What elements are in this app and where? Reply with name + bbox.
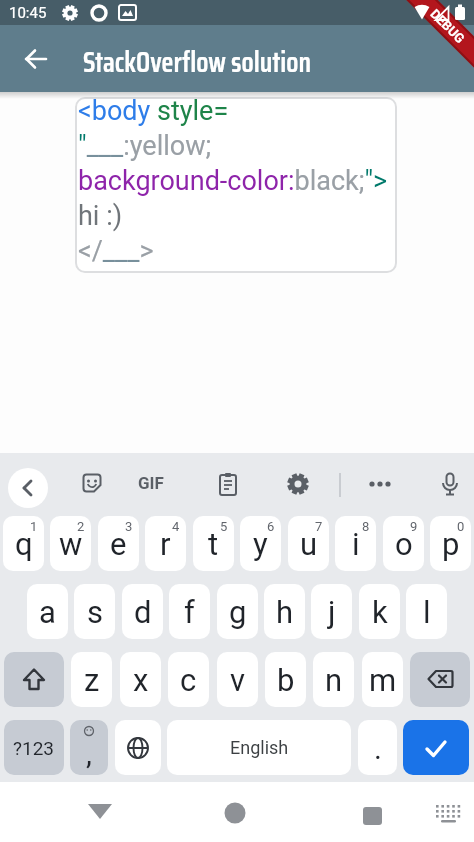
button[interactable] [81, 472, 105, 496]
button[interactable] [363, 807, 383, 827]
staticText: 8 [362, 519, 370, 534]
staticText: 5 [220, 519, 228, 534]
staticText: . [374, 731, 382, 766]
staticText: z [84, 662, 100, 698]
staticText: c [180, 662, 197, 698]
button[interactable]: k [359, 584, 400, 639]
staticText: 6 [267, 519, 275, 534]
button[interactable]: d [122, 584, 163, 639]
button[interactable]: r [145, 516, 186, 571]
button[interactable] [438, 472, 462, 496]
staticText: <body style= "___:yellow; background-col… [78, 95, 388, 266]
button[interactable] [286, 472, 310, 496]
staticText: m [369, 662, 397, 698]
staticText: l [423, 594, 431, 630]
staticText: f [184, 594, 195, 630]
button[interactable]: English [167, 720, 351, 775]
button[interactable]: z [71, 652, 112, 707]
staticText: s [87, 594, 103, 630]
button[interactable] [368, 472, 392, 496]
button[interactable]: t [193, 516, 234, 571]
button[interactable]: a [27, 584, 68, 639]
button[interactable]: c [168, 652, 209, 707]
button[interactable] [12, 35, 60, 83]
button[interactable]: i [335, 516, 376, 571]
button[interactable]: e [98, 516, 139, 571]
staticText: d [134, 594, 152, 630]
staticText: q [15, 526, 33, 562]
staticText: y [253, 526, 268, 562]
staticText: e [110, 526, 127, 562]
staticText: 9 [410, 519, 418, 534]
staticText: i [352, 526, 360, 562]
button[interactable] [224, 802, 246, 824]
button[interactable] [410, 652, 470, 707]
staticText: p [442, 526, 460, 562]
staticText: w [59, 526, 83, 562]
staticText: g [229, 594, 247, 630]
staticText: k [372, 594, 388, 630]
staticText: r [160, 526, 171, 562]
staticText: ?123 [13, 737, 55, 759]
button[interactable]: ?123 [4, 720, 64, 775]
staticText: GIF [138, 473, 164, 493]
staticText: 2 [77, 519, 85, 534]
staticText: 7 [315, 519, 323, 534]
button[interactable] [86, 800, 114, 828]
button[interactable]: w [50, 516, 91, 571]
staticText: StackOverflow solution [83, 40, 312, 84]
button[interactable] [8, 468, 48, 508]
button[interactable]: h [264, 584, 305, 639]
button[interactable] [216, 472, 240, 496]
button[interactable]: p [430, 516, 471, 571]
button[interactable] [115, 720, 161, 775]
staticText: j [328, 594, 336, 630]
staticText: 10:45 [9, 4, 47, 22]
button[interactable]: j [311, 584, 352, 639]
button[interactable]: x [120, 652, 161, 707]
staticText: English [230, 737, 289, 758]
button[interactable]: q [3, 516, 44, 571]
staticText: 0 [457, 519, 465, 534]
button[interactable]: g [217, 584, 258, 639]
button[interactable] [434, 803, 464, 833]
button[interactable]: f [169, 584, 210, 639]
button[interactable]: v [217, 652, 258, 707]
staticText: n [325, 662, 343, 698]
staticText: DEBUG [427, 6, 468, 46]
staticText: 3 [125, 519, 133, 534]
staticText: u [300, 526, 318, 562]
staticText: 1 [30, 519, 38, 534]
button[interactable]: m [362, 652, 403, 707]
button[interactable]: GIF [138, 473, 164, 493]
button[interactable]: <body style= "___:yellow; background-col… [75, 97, 397, 273]
button[interactable]: o [383, 516, 424, 571]
staticText: x [133, 662, 149, 698]
button[interactable]: , [70, 720, 108, 775]
staticText: o [395, 526, 413, 562]
staticText: t [208, 526, 219, 562]
staticText: b [277, 662, 295, 698]
button[interactable]: l [406, 584, 447, 639]
button[interactable]: b [265, 652, 306, 707]
button[interactable]: s [74, 584, 115, 639]
staticText: 4 [172, 519, 180, 534]
button[interactable]: . [358, 720, 397, 775]
button[interactable]: n [313, 652, 354, 707]
button[interactable] [4, 652, 64, 707]
button[interactable]: u [288, 516, 329, 571]
staticText: v [230, 662, 246, 698]
button[interactable]: y [240, 516, 281, 571]
staticText: a [39, 594, 56, 630]
staticText: , [86, 736, 92, 771]
staticText: h [276, 594, 294, 630]
button[interactable] [403, 720, 469, 775]
